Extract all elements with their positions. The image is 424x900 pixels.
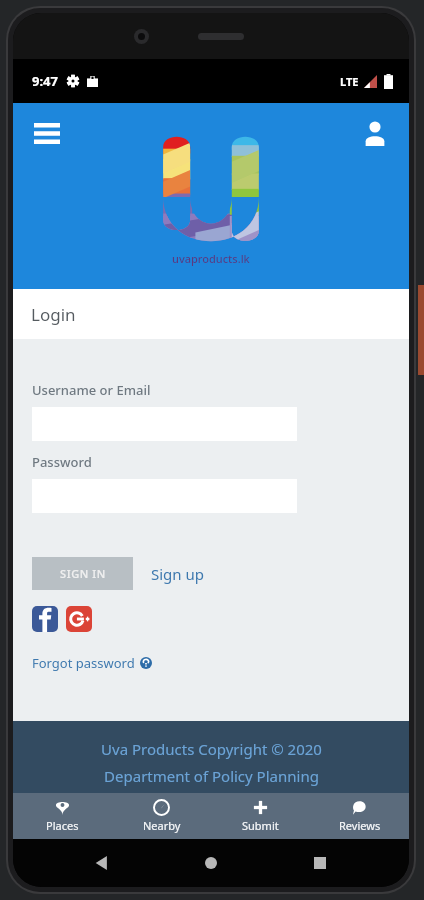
button[interactable]: Reviews xyxy=(310,793,409,839)
staticText: SIGN IN xyxy=(60,566,106,581)
button[interactable]: Sign in with Facebook xyxy=(32,606,58,632)
staticText: Places xyxy=(46,818,79,833)
button[interactable]: SIGN IN xyxy=(32,557,133,590)
staticText: Reviews xyxy=(339,818,381,833)
staticText: Uva Products Copyright © 2020 xyxy=(101,739,322,759)
staticText: Forgot password xyxy=(32,654,135,672)
staticText: LTE xyxy=(340,74,359,89)
button[interactable]: Sign in with Google xyxy=(66,606,92,632)
button[interactable]: Account xyxy=(355,113,395,153)
staticText: Nearby xyxy=(143,818,181,833)
button[interactable]: Recent apps xyxy=(300,843,340,883)
button[interactable]: Back xyxy=(82,843,122,883)
staticText: uvaproducts.lk xyxy=(172,251,250,266)
button[interactable]: Home xyxy=(191,843,231,883)
staticText: Login xyxy=(31,303,76,326)
button[interactable]: Sign up xyxy=(147,558,208,590)
button[interactable]: Submit xyxy=(211,793,310,839)
staticText: Submit xyxy=(242,818,279,833)
button[interactable]: Places xyxy=(13,793,112,839)
button[interactable]: Forgot password xyxy=(32,650,152,676)
staticText: Username or Email xyxy=(32,381,151,399)
staticText: Sign up xyxy=(151,564,204,584)
staticText: 9:47 xyxy=(32,72,58,90)
staticText: Department of Policy Planning xyxy=(104,766,319,786)
button[interactable]: Open navigation menu xyxy=(27,113,67,153)
staticText: Password xyxy=(32,453,92,471)
button[interactable]: Nearby xyxy=(112,793,211,839)
